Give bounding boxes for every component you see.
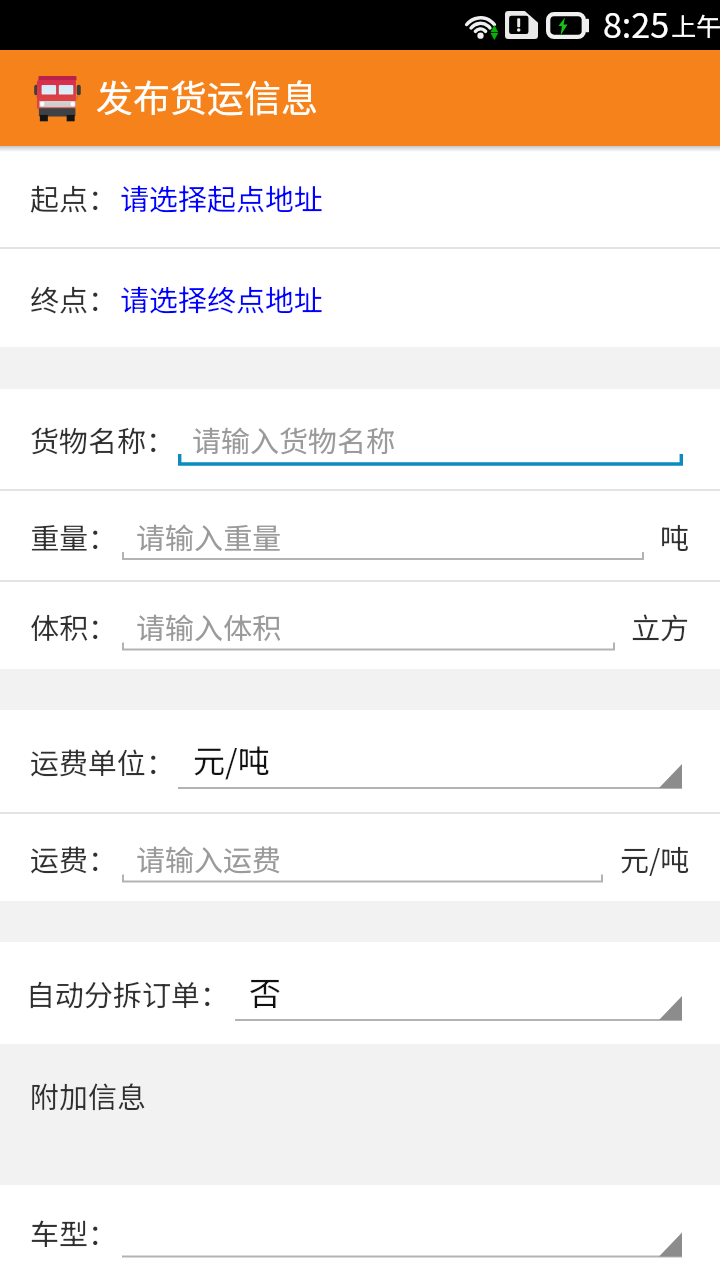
staticText: 吨 [660,515,690,557]
staticText: 请输入货物名称 [192,418,396,460]
staticText: 体积： [30,605,118,647]
staticText: 上午 [671,7,720,43]
staticText: 重量： [30,515,118,557]
staticText: 请选择起点地址 [120,176,324,218]
button[interactable]: 车型： [0,1185,720,1279]
button[interactable]: 运费： [0,814,720,901]
button[interactable]: 重量： [0,491,720,580]
staticText: 8:25 [603,0,670,48]
staticText: 起点： [30,176,118,218]
button[interactable]: Truck [0,50,720,146]
staticText: 附加信息 [30,1074,147,1116]
staticText: 请输入运费 [136,837,282,879]
staticText: 车型： [30,1211,118,1253]
staticText: 发布货运信息 [96,69,318,123]
staticText: 运费： [30,837,118,879]
staticText: 元/吨 [620,837,690,879]
button[interactable]: 运费单位： [0,710,720,812]
staticText: 立方 [631,605,690,647]
button[interactable]: 终点： [0,249,720,347]
other: Truck [34,75,81,122]
button[interactable]: 起点： [0,146,720,247]
staticText: 货物名称： [30,418,176,460]
button[interactable]: 体积： [0,582,720,669]
staticText: 运费单位： [30,740,176,782]
staticText: 否 [249,968,282,1014]
staticText: 自动分拆订单： [26,972,230,1014]
staticText: 元/吨 [193,736,270,782]
staticText: 请选择终点地址 [120,277,324,319]
staticText: 请输入体积 [136,605,282,647]
staticText: 终点： [30,277,118,319]
button[interactable]: 自动分拆订单： [0,942,720,1044]
staticText: 请输入重量 [136,515,282,557]
button[interactable]: 货物名称： [0,389,720,489]
